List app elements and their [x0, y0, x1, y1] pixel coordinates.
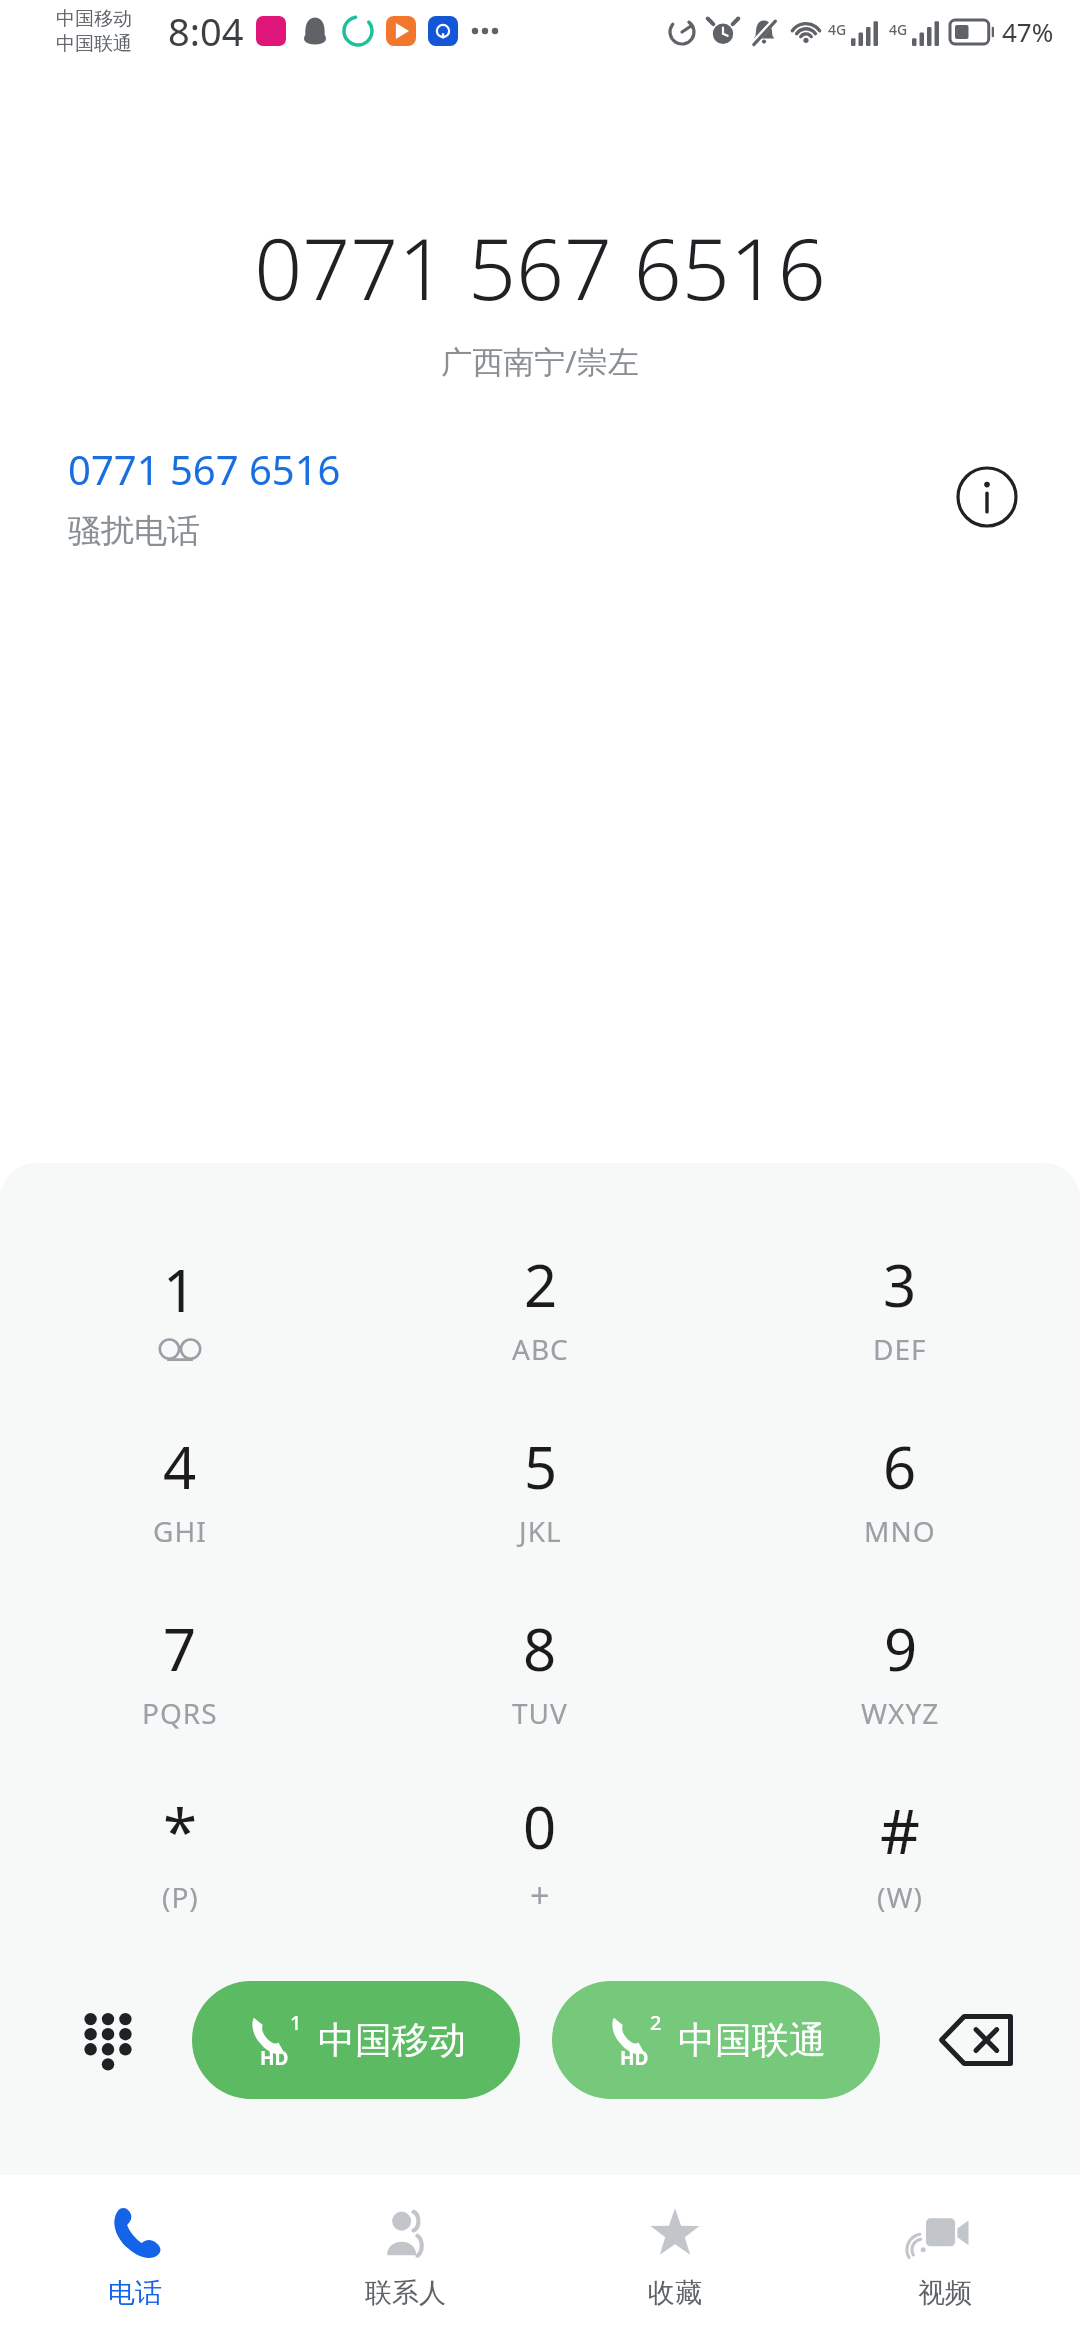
staticText: DEF: [873, 1330, 927, 1368]
staticText: +: [530, 1872, 551, 1918]
button[interactable]: 6: [720, 1397, 1080, 1579]
button[interactable]: 视频: [810, 2175, 1080, 2340]
staticText: 4G: [828, 20, 847, 39]
staticText: 电话: [108, 2276, 162, 2310]
staticText: 联系人: [365, 2276, 446, 2310]
button[interactable]: *: [0, 1761, 360, 1943]
staticText: 2: [524, 1245, 558, 1324]
staticText: GHI: [153, 1512, 207, 1550]
staticText: 中国联通: [678, 2017, 826, 2064]
staticText: 9: [884, 1609, 918, 1688]
staticText: 8: [523, 1609, 557, 1688]
staticText: 6: [883, 1427, 917, 1506]
staticText: 4G: [889, 20, 908, 39]
button[interactable]: #: [720, 1761, 1080, 1943]
button[interactable]: 5: [360, 1397, 720, 1579]
staticText: 骚扰电话: [68, 510, 200, 552]
staticText: JKL: [519, 1512, 562, 1550]
button[interactable]: 收藏: [540, 2175, 810, 2340]
staticText: 7: [163, 1609, 197, 1688]
button[interactable]: 8: [360, 1579, 720, 1761]
staticText: PQRS: [142, 1694, 218, 1732]
staticText: 0: [523, 1787, 557, 1866]
button[interactable]: 9: [720, 1579, 1080, 1761]
staticText: 2: [650, 2009, 662, 2036]
staticText: 47%: [1002, 14, 1054, 49]
staticText: 3: [883, 1245, 917, 1324]
staticText: 广西南宁/崇左: [0, 340, 1080, 382]
button[interactable]: 0771 567 6516: [68, 442, 944, 552]
staticText: 中国移动: [318, 2017, 466, 2064]
staticText: ABC: [512, 1330, 569, 1368]
staticText: (P): [162, 1878, 199, 1916]
button[interactable]: 1: [192, 1981, 520, 2099]
button[interactable]: 0: [360, 1761, 720, 1943]
staticText: 4: [163, 1427, 197, 1506]
button[interactable]: 7: [0, 1579, 360, 1761]
staticText: 8:04: [168, 5, 244, 57]
staticText: (W): [877, 1878, 923, 1916]
button[interactable]: 联系人: [270, 2175, 540, 2340]
staticText: 中国移动: [56, 7, 132, 31]
button[interactable]: 1: [0, 1215, 360, 1397]
staticText: 0771 567 6516: [0, 210, 1080, 324]
staticText: WXYZ: [861, 1694, 940, 1732]
button[interactable]: 2: [360, 1215, 720, 1397]
staticText: TUV: [512, 1694, 568, 1732]
staticText: 1: [163, 1250, 197, 1329]
button[interactable]: 2: [552, 1981, 880, 2099]
staticText: 视频: [918, 2276, 972, 2310]
button[interactable]: 电话: [0, 2175, 270, 2340]
button[interactable]: 4: [0, 1397, 360, 1579]
staticText: #: [880, 1788, 921, 1872]
button[interactable]: 隐藏拨号盘: [62, 1994, 154, 2086]
staticText: HD: [620, 2045, 649, 2071]
button[interactable]: 号码信息: [944, 454, 1030, 540]
staticText: 1: [290, 2009, 302, 2036]
staticText: 收藏: [648, 2276, 702, 2310]
staticText: 中国联通: [56, 32, 132, 56]
button[interactable]: 删除: [928, 1992, 1024, 2088]
staticText: HD: [260, 2045, 289, 2071]
staticText: 5: [524, 1427, 558, 1506]
staticText: *: [163, 1788, 198, 1872]
staticText: 0771 567 6516: [68, 442, 341, 496]
button[interactable]: 3: [720, 1215, 1080, 1397]
staticText: MNO: [864, 1512, 936, 1550]
